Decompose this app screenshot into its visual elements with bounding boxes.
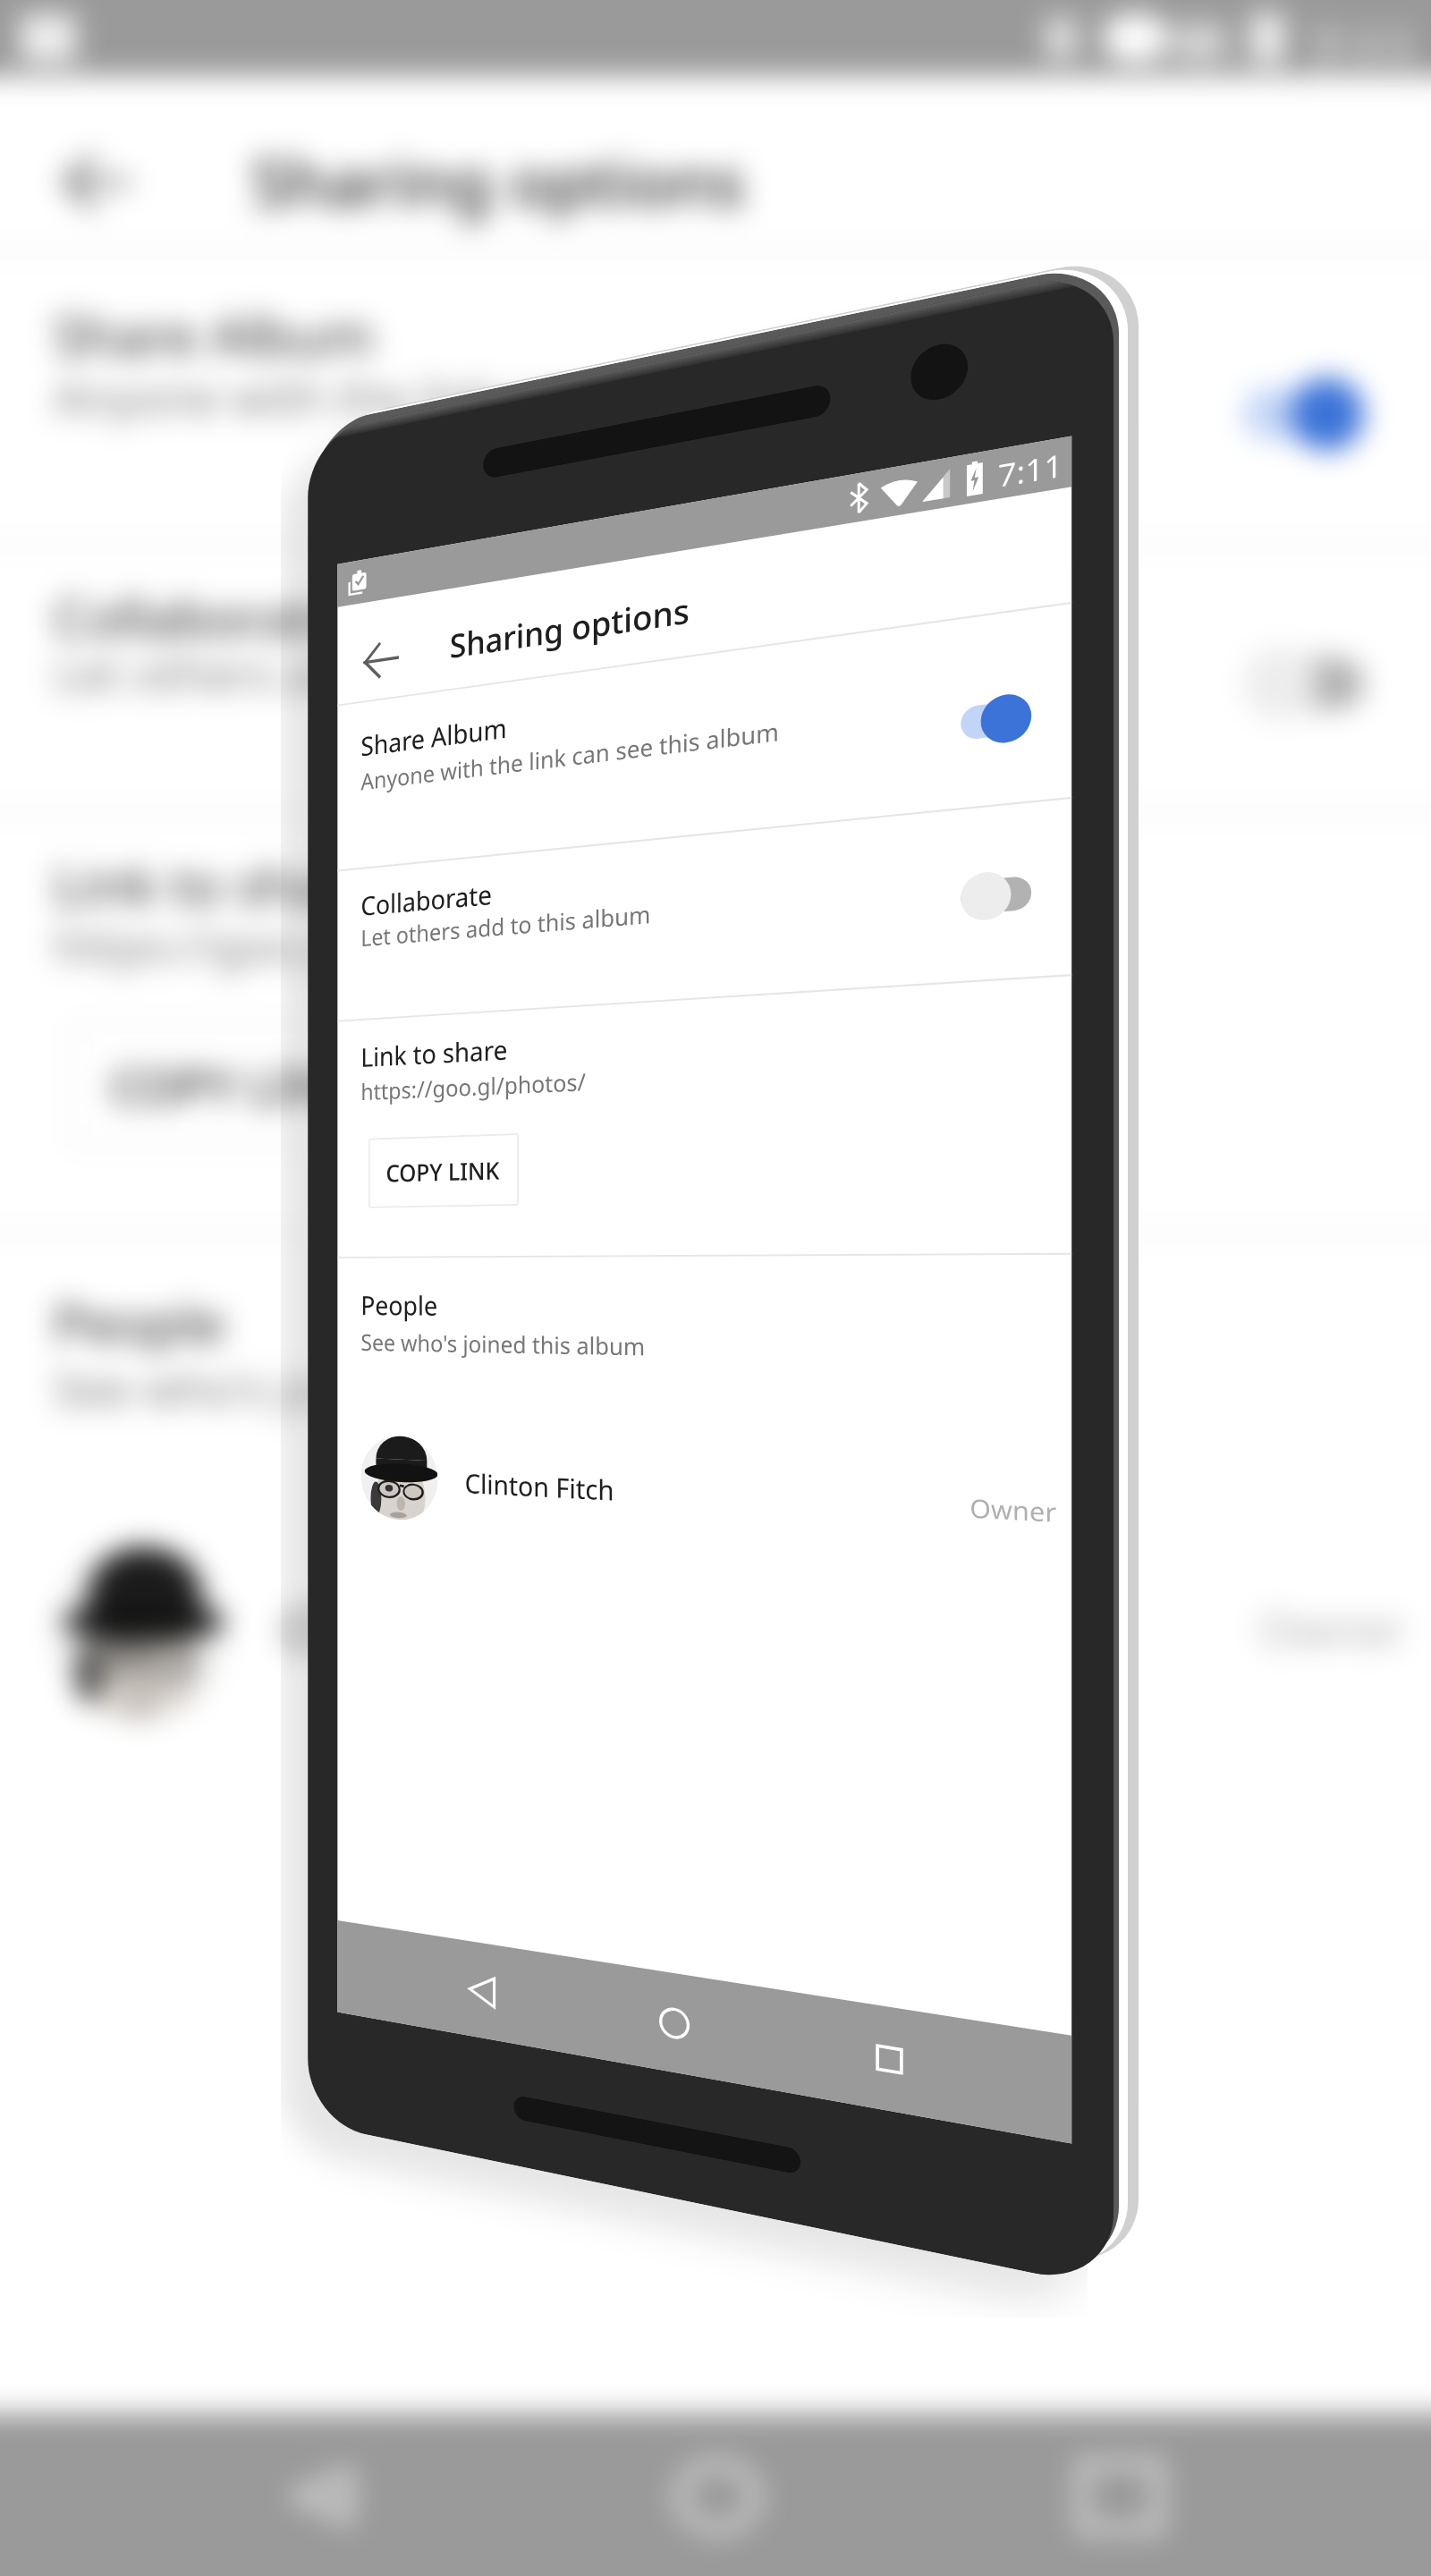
button[interactable]: Home	[648, 1992, 701, 2055]
staticText: Share Album	[361, 709, 507, 764]
button[interactable]: Back	[458, 1961, 507, 2021]
staticText: Sharing options	[450, 586, 690, 668]
staticText: 7:11	[1308, 12, 1418, 87]
staticText: Owner	[1259, 1597, 1407, 1660]
button[interactable]: Navigate up	[356, 630, 405, 690]
staticText: https://goo.gl/photos/	[54, 913, 539, 977]
staticText: People	[361, 1287, 438, 1323]
staticText: Let others add to this album	[54, 641, 669, 705]
button[interactable]: Recent apps	[861, 2027, 918, 2093]
staticText: Clinton Fitch	[284, 1592, 596, 1665]
button[interactable]	[337, 1407, 1072, 1586]
staticText: Owner	[970, 1490, 1057, 1530]
staticText: Link to share	[361, 1031, 508, 1075]
staticText: 7:11	[998, 443, 1063, 497]
button[interactable]	[337, 799, 1072, 1020]
staticText: Anyone with the link can see this album	[54, 365, 917, 428]
staticText: Collaborate	[361, 876, 492, 923]
staticText: Link to share	[54, 848, 376, 920]
button[interactable]	[337, 604, 1072, 870]
staticText: Sharing options	[251, 137, 746, 226]
staticText: https://goo.gl/photos/	[361, 1065, 586, 1107]
staticText: Share Album	[54, 299, 375, 371]
staticText: See who's joined this album	[54, 1356, 658, 1419]
staticText: Anyone with the link can see this album	[361, 714, 779, 797]
staticText: COPY LINK	[111, 1053, 360, 1118]
button[interactable]: COPY LINK	[368, 1133, 519, 1208]
staticText: People	[54, 1286, 225, 1359]
staticText: See who's joined this album	[361, 1326, 646, 1363]
button[interactable]: Collaborate, off	[961, 868, 1031, 922]
staticText: Clinton Fitch	[465, 1465, 615, 1508]
staticText: Let others add to this album	[361, 897, 651, 953]
staticText: COPY LINK	[386, 1154, 500, 1189]
button[interactable]: Share album, on	[961, 691, 1031, 748]
staticText: Collaborate	[54, 580, 343, 653]
